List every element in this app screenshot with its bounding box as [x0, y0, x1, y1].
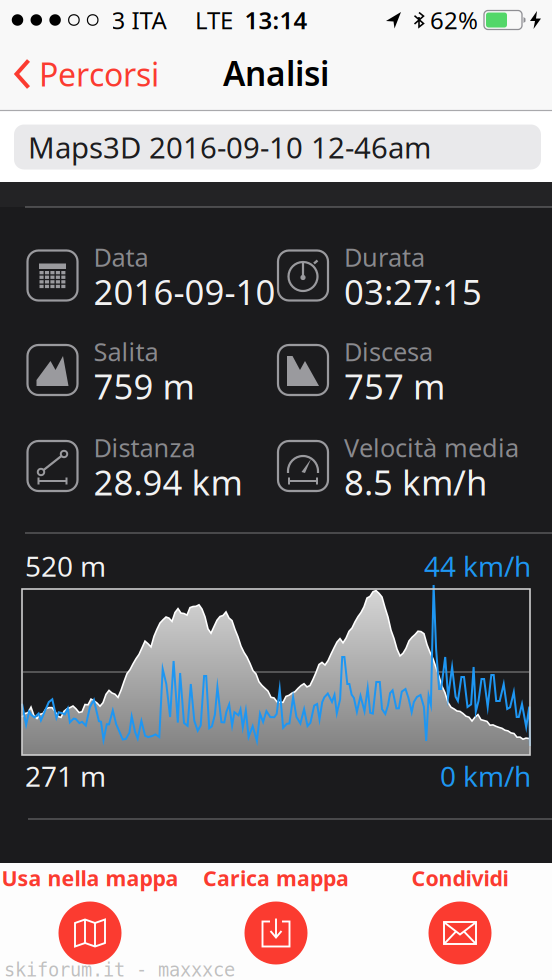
staticText: 3 ITA [111, 4, 166, 36]
staticText: Usa nella mappa [1, 864, 178, 892]
staticText: 759 m [93, 363, 194, 409]
button[interactable]: Back to Percorsi [11, 53, 221, 95]
staticText: Data [93, 240, 148, 274]
staticText: skiforum.it - maxxxce [4, 959, 235, 980]
button[interactable]: Condividi [365, 861, 552, 978]
button[interactable]: Maps3D 2016-09-10 12-46am [14, 124, 541, 169]
staticText: 8.5 km/h [344, 459, 487, 505]
staticText: Discesa [344, 335, 433, 368]
staticText: Carica mappa [203, 864, 349, 892]
staticText: Velocità media [344, 431, 519, 464]
staticText: 62% [430, 4, 478, 36]
staticText: LTE [195, 4, 233, 36]
staticText: Maps3D 2016-09-10 12-46am [28, 127, 431, 166]
staticText: Condividi [411, 864, 508, 892]
staticText: 44 km/h [424, 547, 531, 585]
staticText: 2016-09-10 [93, 268, 275, 314]
staticText: 271 m [25, 757, 106, 795]
staticText: Percorsi [39, 53, 159, 95]
staticText: 520 m [25, 547, 106, 585]
staticText: 757 m [344, 363, 445, 409]
staticText: Analisi [223, 51, 329, 95]
staticText: Salita [93, 335, 158, 368]
staticText: Distanza [93, 431, 195, 464]
staticText: 13:14 [244, 4, 307, 36]
staticText: 03:27:15 [344, 268, 482, 314]
button[interactable]: Usa nella mappa [0, 861, 185, 978]
staticText: 28.94 km [93, 459, 242, 505]
button[interactable]: Carica mappa [181, 861, 371, 978]
staticText: Durata [344, 240, 425, 274]
staticText: 0 km/h [440, 757, 531, 795]
